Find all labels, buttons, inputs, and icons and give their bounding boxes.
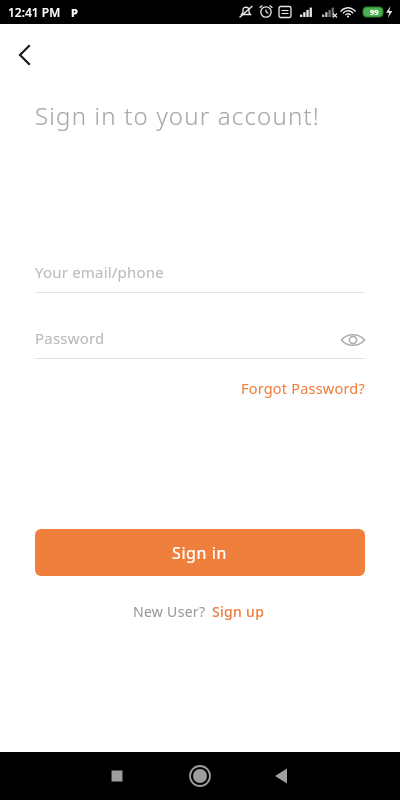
button[interactable]: Show password bbox=[335, 322, 371, 358]
button[interactable]: Forgot Password? bbox=[237, 376, 369, 400]
staticText: P bbox=[71, 5, 78, 20]
staticText: New User? bbox=[133, 602, 210, 621]
button[interactable]: Your email/phone bbox=[35, 262, 365, 293]
staticText: Sign in to your account! bbox=[35, 99, 320, 132]
button[interactable]: Sign in bbox=[35, 529, 365, 576]
staticText: Password bbox=[35, 328, 105, 348]
staticText: 12:41 PM bbox=[8, 4, 61, 20]
staticText: Sign up bbox=[212, 602, 265, 621]
staticText: 99 bbox=[370, 7, 379, 17]
staticText: Sign in bbox=[172, 542, 228, 564]
staticText: Forgot Password? bbox=[241, 378, 365, 398]
button[interactable]: Password bbox=[35, 328, 365, 359]
button[interactable]: Sign up bbox=[210, 600, 267, 623]
button[interactable]: Back bbox=[259, 754, 303, 798]
button[interactable]: Recent apps bbox=[95, 754, 139, 798]
button[interactable]: Home bbox=[178, 754, 222, 798]
button[interactable]: Back bbox=[2, 33, 46, 77]
staticText: Your email/phone bbox=[35, 262, 164, 282]
